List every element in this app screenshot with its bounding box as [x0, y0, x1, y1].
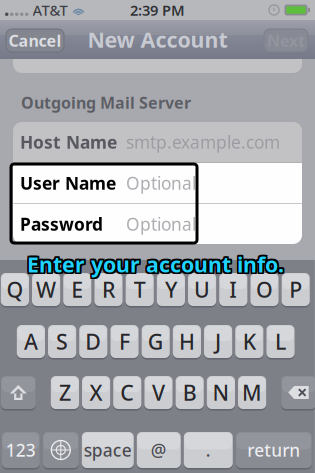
staticText: P — [289, 275, 302, 304]
button[interactable]: L — [266, 324, 295, 359]
staticText: I — [229, 275, 237, 304]
button[interactable]: S — [48, 324, 76, 359]
staticText: N — [212, 378, 229, 407]
button[interactable]: Host Name — [13, 122, 302, 162]
staticText: Optional — [126, 212, 196, 235]
button[interactable]: O — [250, 272, 279, 307]
staticText: Enter your account info. — [27, 252, 284, 280]
button[interactable]: @ — [137, 431, 181, 469]
staticText: smtp.example.com — [126, 130, 280, 153]
staticText: Enter your account info. — [27, 248, 284, 277]
staticText: 123 — [6, 438, 36, 461]
button[interactable]: T — [126, 272, 154, 307]
staticText: Password — [20, 212, 103, 235]
button[interactable]: Q — [1, 272, 29, 307]
staticText: H — [179, 327, 195, 356]
staticText: U — [194, 275, 210, 304]
staticText: Outgoing Mail Server — [21, 92, 191, 113]
staticText: Enter your account info. — [29, 252, 286, 280]
button[interactable]: P — [282, 272, 310, 307]
staticText: AT&T — [32, 0, 67, 20]
staticText: C — [120, 378, 134, 407]
staticText: Enter your account info. — [25, 252, 282, 280]
button[interactable]: 123 — [2, 431, 40, 469]
staticText: B — [183, 378, 197, 407]
button[interactable]: return — [236, 431, 312, 469]
staticText: V — [152, 378, 165, 407]
staticText: E — [71, 275, 83, 304]
staticText: User Name — [20, 171, 116, 194]
button[interactable]: B — [176, 375, 204, 410]
button[interactable]: . — [184, 431, 233, 469]
staticText: D — [85, 327, 101, 356]
button[interactable]: H — [173, 324, 201, 359]
button[interactable]: X — [82, 375, 110, 410]
button[interactable]: Cancel — [6, 29, 64, 52]
staticText: Next — [267, 30, 305, 51]
button[interactable]: F — [110, 324, 139, 359]
button[interactable]: Delete — [281, 375, 315, 410]
button[interactable]: User Name — [13, 163, 302, 203]
staticText: . — [206, 438, 211, 461]
staticText: J — [215, 327, 221, 356]
staticText: Optional — [126, 171, 196, 194]
button[interactable]: Next — [264, 29, 308, 52]
staticText: F — [119, 327, 130, 356]
staticText: K — [243, 327, 256, 356]
button[interactable]: Z — [51, 375, 79, 410]
staticText: return — [247, 438, 300, 461]
button[interactable]: Password — [13, 204, 302, 244]
button[interactable]: E — [63, 272, 91, 307]
staticText: Q — [6, 275, 23, 304]
button[interactable]: G — [142, 324, 170, 359]
button[interactable]: space — [82, 431, 134, 469]
button[interactable]: Y — [157, 272, 185, 307]
staticText: S — [56, 327, 68, 356]
button[interactable]: V — [144, 375, 173, 410]
staticText: R — [102, 275, 115, 304]
staticText: Enter your account info. — [27, 250, 284, 278]
button[interactable]: D — [79, 324, 107, 359]
staticText: Enter your account info. — [29, 250, 286, 278]
staticText: A — [24, 327, 38, 356]
button[interactable]: Shift — [1, 375, 36, 410]
staticText: 2:39 PM — [130, 0, 185, 20]
staticText: Host Name — [20, 130, 117, 153]
button[interactable]: U — [188, 272, 216, 307]
button[interactable]: M — [238, 375, 266, 410]
staticText: M — [242, 378, 262, 407]
button[interactable]: N — [207, 375, 235, 410]
button[interactable]: R — [94, 272, 123, 307]
staticText: W — [36, 275, 56, 304]
staticText: Cancel — [8, 30, 61, 51]
button[interactable]: J — [204, 324, 232, 359]
staticText: G — [148, 327, 164, 356]
staticText: Z — [59, 378, 71, 407]
staticText: @ — [151, 438, 167, 461]
staticText: T — [134, 275, 146, 304]
button[interactable]: C — [113, 375, 141, 410]
staticText: Enter your account info. — [25, 248, 282, 277]
button[interactable]: K — [235, 324, 263, 359]
button[interactable]: A — [17, 324, 45, 359]
staticText: X — [90, 378, 103, 407]
staticText: Enter your account info. — [29, 248, 286, 277]
button[interactable]: W — [32, 272, 60, 307]
button[interactable]: I — [219, 272, 247, 307]
staticText: O — [256, 275, 273, 304]
staticText: Y — [165, 275, 177, 304]
button[interactable]: Next keyboard — [43, 431, 79, 469]
staticText: Enter your account info. — [25, 250, 282, 278]
staticText: L — [275, 327, 286, 356]
staticText: New Account — [87, 25, 227, 54]
staticText: space — [84, 438, 132, 461]
